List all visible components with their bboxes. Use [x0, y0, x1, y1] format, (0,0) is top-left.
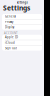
button[interactable]: General [2, 14, 42, 19]
staticText: Sign Out [5, 46, 17, 50]
button[interactable]: Display [2, 25, 42, 30]
staticText: Privacy [5, 20, 13, 24]
staticText: Settings [3, 4, 30, 12]
button[interactable]: Apple ID [2, 35, 42, 40]
button[interactable]: Sign Out [2, 46, 42, 51]
staticText: ACCOUNT [4, 31, 17, 35]
button[interactable]: Privacy [2, 19, 42, 24]
button[interactable]: iCloud [2, 40, 42, 45]
staticText: iCloud [5, 41, 15, 44]
staticText: Settings [16, 1, 27, 4]
staticText: Apple ID [5, 35, 18, 39]
staticText: Display [5, 25, 14, 29]
staticText: General [5, 15, 16, 18]
